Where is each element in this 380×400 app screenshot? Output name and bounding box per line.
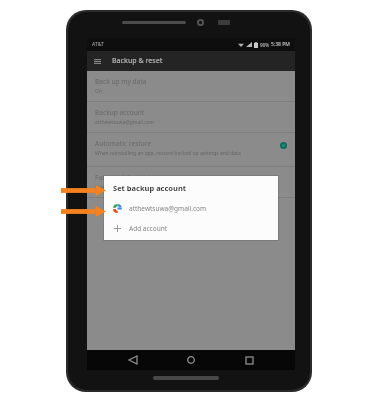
button[interactable]: Back: [121, 350, 145, 370]
staticText: Add account: [129, 224, 168, 233]
staticText: Factory data reset: [95, 173, 152, 182]
button[interactable]: Backup account: [87, 102, 295, 132]
staticText: atthewtsuwa@gmail.com: [95, 119, 155, 126]
staticText: Automatic restore: [95, 139, 152, 148]
button[interactable]: atthewtsuwa@gmail.com: [113, 200, 270, 216]
button[interactable]: Automatic restore toggle: [277, 139, 289, 151]
staticText: Erases all data on phone: [95, 184, 153, 191]
staticText: Backup & reset: [112, 56, 163, 66]
staticText: Backup account: [95, 108, 145, 117]
button[interactable]: Automatic restore: [87, 133, 295, 166]
staticText: AT&T: [92, 41, 104, 48]
staticText: On: [95, 88, 102, 95]
staticText: When reinstalling an app, restore backed…: [95, 150, 241, 157]
staticText: Set backup account: [113, 183, 187, 193]
button[interactable]: Home: [179, 350, 203, 370]
button[interactable]: Open navigation drawer: [87, 51, 107, 71]
staticText: 98%: [260, 42, 269, 48]
button[interactable]: Add account: [113, 220, 270, 236]
button[interactable]: Factory data reset: [87, 167, 295, 197]
staticText: atthewtsuwa@gmail.com: [129, 204, 207, 213]
staticText: 5:38 PM: [271, 41, 290, 48]
staticText: Back up my data: [95, 77, 147, 86]
button[interactable]: Recent apps: [237, 350, 261, 370]
